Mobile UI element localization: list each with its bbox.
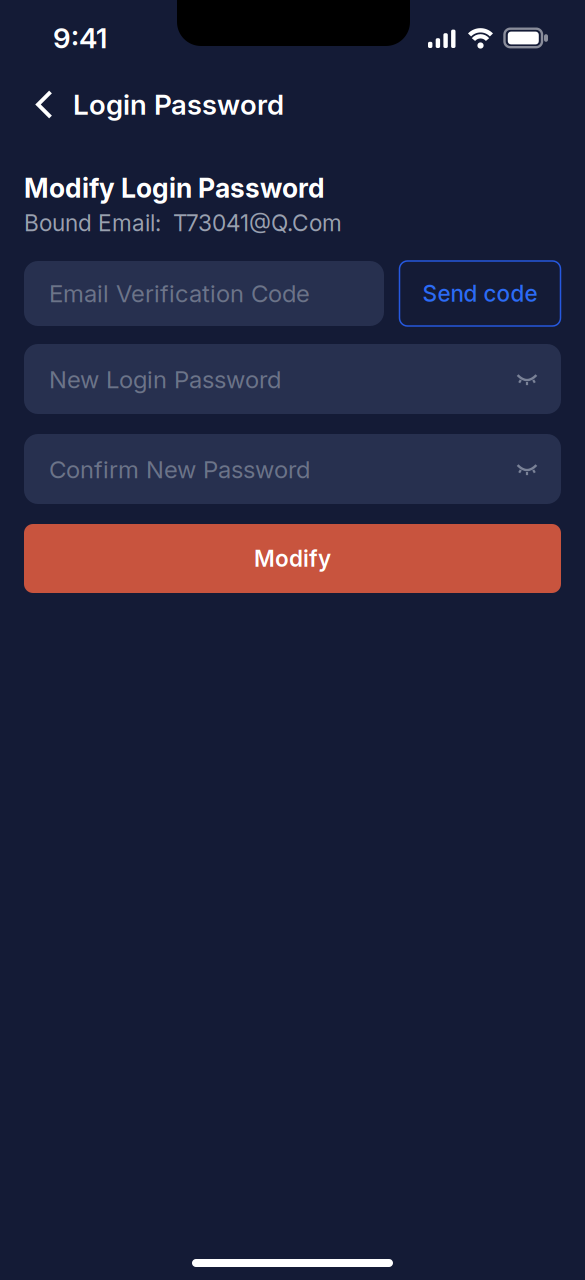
staticText: Modify xyxy=(254,545,331,572)
staticText: Login Password xyxy=(73,88,284,121)
staticText: Send code xyxy=(422,280,537,307)
staticText: New Login Password xyxy=(49,365,281,394)
staticText: 9:41 xyxy=(53,21,107,54)
staticText: Modify Login Password xyxy=(24,172,325,204)
staticText: Confirm New Password xyxy=(49,455,310,484)
staticText: Bound Email: T73041@Q.Com xyxy=(24,210,342,236)
staticText: Email Verification Code xyxy=(49,279,310,308)
